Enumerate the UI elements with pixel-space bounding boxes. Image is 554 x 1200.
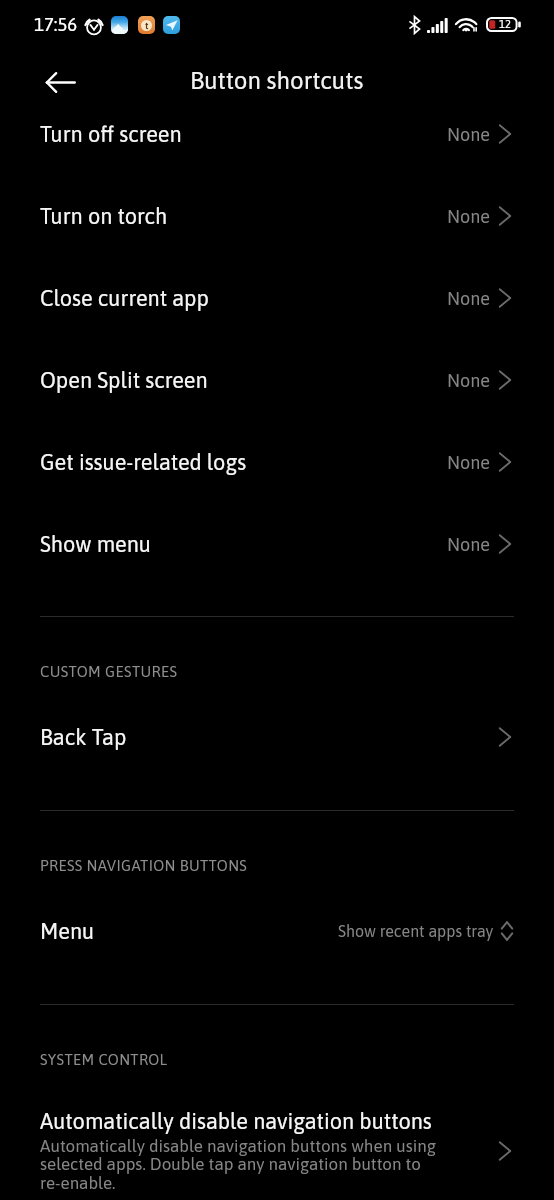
staticText: Automatically disable navigation buttons	[40, 1109, 432, 1134]
staticText: Show menu	[40, 532, 151, 557]
staticText: None	[447, 452, 490, 473]
staticText: 17:56	[34, 14, 78, 35]
staticText: Turn off screen	[40, 122, 182, 147]
staticText: SYSTEM CONTROL	[40, 1051, 168, 1068]
button[interactable]: Back Tap	[0, 702, 554, 772]
staticText: PRESS NAVIGATION BUTTONS	[40, 857, 248, 874]
staticText: Close current app	[40, 286, 209, 311]
staticText: Turn on torch	[40, 204, 168, 229]
button[interactable]: Turn off screen	[0, 93, 554, 175]
staticText: None	[447, 124, 490, 145]
button[interactable]: Automatically disable navigation buttons	[0, 1089, 554, 1200]
staticText: None	[447, 206, 490, 227]
button[interactable]: Get issue-related logs	[0, 421, 554, 503]
staticText: Menu	[40, 919, 95, 944]
staticText: 12	[499, 18, 511, 31]
staticText: None	[447, 370, 490, 391]
button[interactable]: Open Split screen	[0, 339, 554, 421]
button[interactable]: Turn on torch	[0, 175, 554, 257]
staticText: Show recent apps tray	[338, 922, 494, 940]
button[interactable]: Back	[38, 60, 82, 104]
staticText: None	[447, 288, 490, 309]
staticText: Open Split screen	[40, 368, 208, 393]
button[interactable]: Menu	[0, 896, 554, 966]
staticText: None	[447, 534, 490, 555]
staticText: Get issue-related logs	[40, 450, 247, 475]
staticText: t	[145, 20, 149, 31]
staticText: Back Tap	[40, 725, 127, 750]
staticText: Button shortcuts	[190, 67, 364, 95]
staticText: Automatically disable navigation buttons…	[40, 1136, 444, 1193]
button[interactable]: Close current app	[0, 257, 554, 339]
button[interactable]: Show menu	[0, 503, 554, 585]
staticText: CUSTOM GESTURES	[40, 663, 178, 680]
